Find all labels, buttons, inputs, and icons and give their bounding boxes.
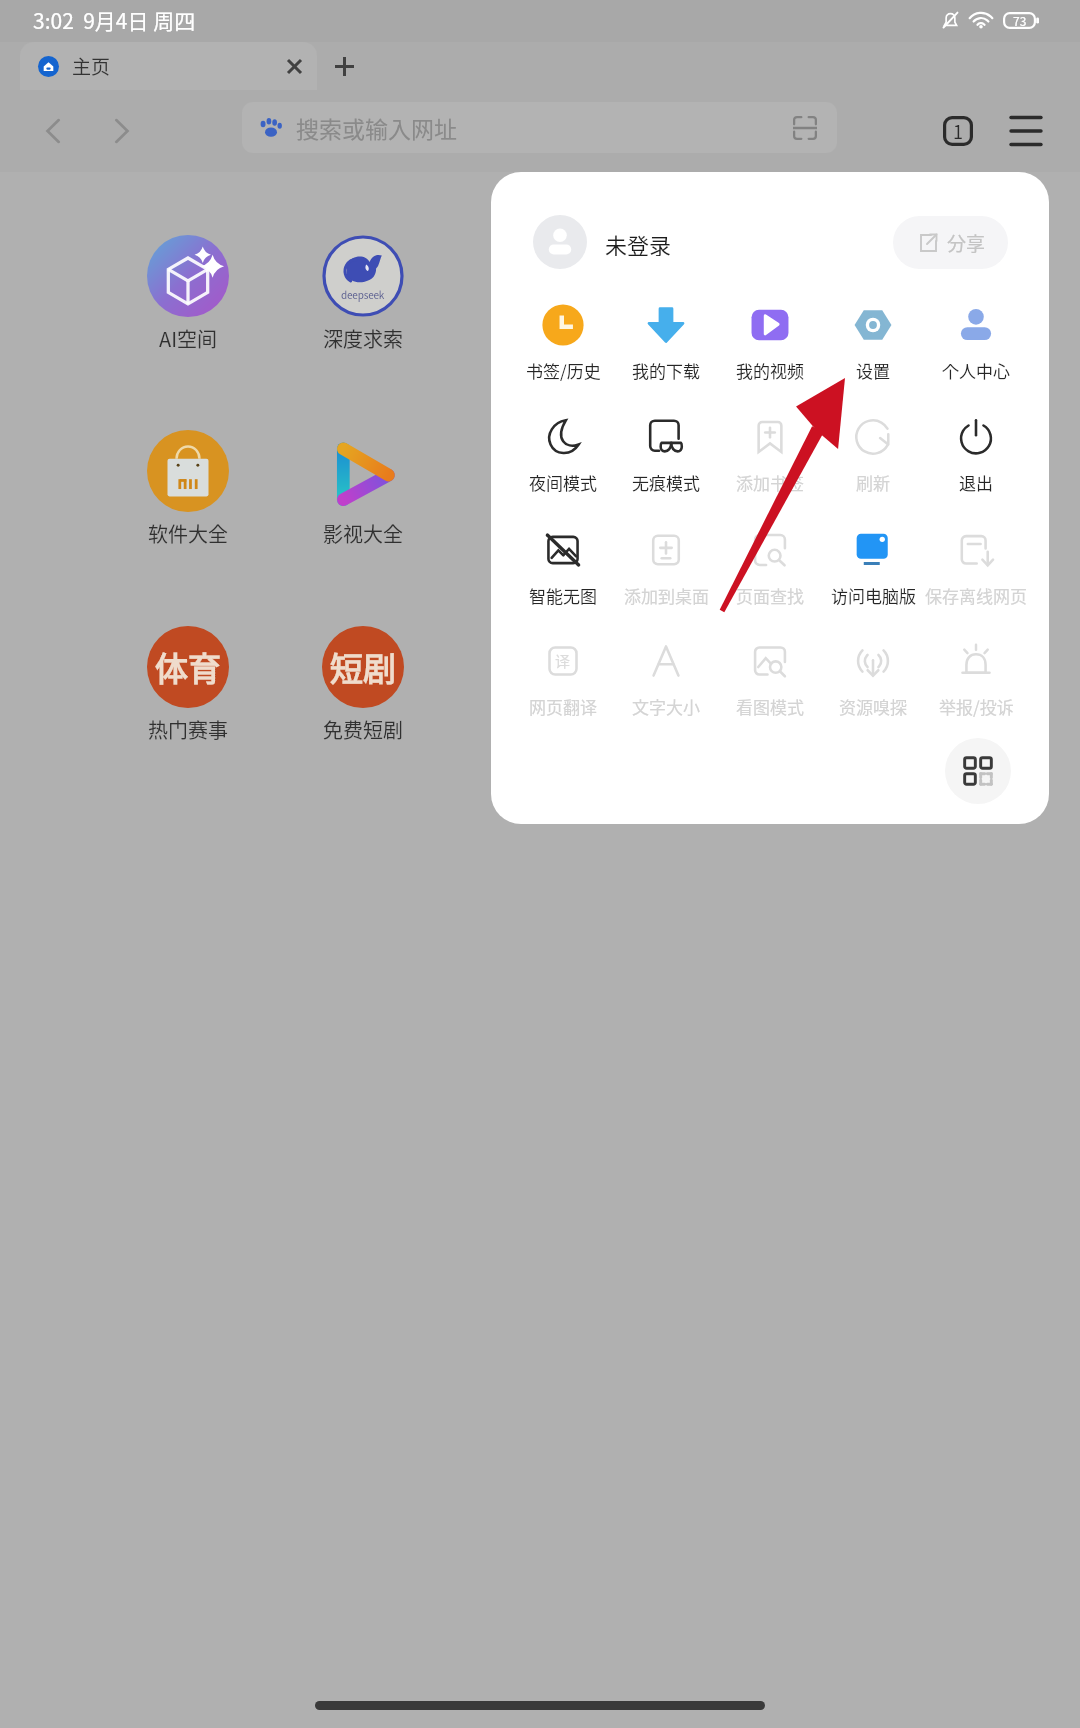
staticText: 书签/历史 bbox=[526, 358, 601, 382]
button[interactable]: 个人中心 bbox=[920, 299, 1032, 379]
button[interactable]: 访问电脑版 bbox=[817, 524, 929, 604]
button[interactable]: 看图模式 bbox=[714, 635, 826, 715]
button[interactable]: 设置 bbox=[817, 299, 929, 379]
button[interactable]: 主页 bbox=[20, 42, 317, 90]
staticText: 主页 bbox=[72, 52, 111, 80]
staticText: 短剧 bbox=[330, 643, 396, 691]
staticText: 未登录 bbox=[605, 228, 672, 256]
staticText: 看图模式 bbox=[736, 694, 804, 718]
button[interactable]: 夜间模式 bbox=[507, 411, 619, 491]
staticText: 添加书签 bbox=[736, 470, 804, 494]
button[interactable]: 短剧 bbox=[283, 626, 443, 741]
staticText: 夜间模式 bbox=[529, 470, 597, 494]
button[interactable]: 译 bbox=[507, 635, 619, 715]
staticText: deepseek bbox=[341, 287, 385, 301]
staticText: 分享 bbox=[947, 229, 986, 257]
button[interactable]: 分享 bbox=[893, 216, 1008, 269]
staticText: 体育 bbox=[155, 643, 221, 691]
staticText: 文字大小 bbox=[632, 694, 700, 718]
staticText: 退出 bbox=[959, 470, 993, 494]
staticText: 网页翻译 bbox=[529, 694, 597, 718]
staticText: 软件大全 bbox=[148, 519, 228, 545]
staticText: 我的视频 bbox=[736, 358, 804, 382]
staticText: 刷新 bbox=[856, 470, 890, 494]
button[interactable]: Forward bbox=[92, 101, 152, 161]
button[interactable]: 搜索或输入网址 bbox=[242, 102, 837, 153]
button[interactable]: Back bbox=[23, 101, 83, 161]
button[interactable]: Tabs bbox=[928, 101, 988, 161]
staticText: 智能无图 bbox=[529, 583, 597, 607]
button[interactable]: New tab bbox=[320, 42, 368, 90]
staticText: 我的下载 bbox=[632, 358, 700, 382]
staticText: 个人中心 bbox=[942, 358, 1010, 382]
staticText: 3:02 9月4日 周四 bbox=[33, 5, 196, 35]
button[interactable]: 退出 bbox=[920, 411, 1032, 491]
staticText: AI空间 bbox=[159, 324, 218, 350]
staticText: 73 bbox=[1013, 12, 1027, 29]
staticText: 1 bbox=[953, 118, 963, 144]
button[interactable]: 书签/历史 bbox=[507, 299, 619, 379]
button[interactable]: 保存离线网页 bbox=[920, 524, 1032, 604]
staticText: 举报/投诉 bbox=[939, 694, 1014, 718]
staticText: 热门赛事 bbox=[148, 715, 228, 741]
button[interactable]: 举报/投诉 bbox=[920, 635, 1032, 715]
button[interactable]: 添加书签 bbox=[714, 411, 826, 491]
button[interactable]: Close tab bbox=[274, 46, 314, 86]
button[interactable]: Menu bbox=[996, 101, 1056, 161]
staticText: 译 bbox=[555, 650, 571, 672]
staticText: 设置 bbox=[856, 358, 890, 382]
button[interactable]: 页面查找 bbox=[714, 524, 826, 604]
staticText: 保存离线网页 bbox=[925, 583, 1027, 607]
button[interactable]: 影视大全 bbox=[283, 430, 443, 545]
staticText: 影视大全 bbox=[323, 519, 403, 545]
button[interactable]: Scan QR bbox=[945, 738, 1011, 804]
staticText: 免费短剧 bbox=[323, 715, 403, 741]
staticText: 访问电脑版 bbox=[831, 583, 916, 607]
button[interactable]: 无痕模式 bbox=[610, 411, 722, 491]
staticText: 搜索或输入网址 bbox=[296, 111, 457, 144]
button[interactable]: Account bbox=[533, 215, 587, 269]
button[interactable]: 添加到桌面 bbox=[610, 524, 722, 604]
button[interactable]: 我的下载 bbox=[610, 299, 722, 379]
staticText: 无痕模式 bbox=[632, 470, 700, 494]
staticText: 添加到桌面 bbox=[624, 583, 709, 607]
button[interactable]: 刷新 bbox=[817, 411, 929, 491]
staticText: 资源嗅探 bbox=[839, 694, 907, 718]
button[interactable]: 我的视频 bbox=[714, 299, 826, 379]
staticText: 页面查找 bbox=[736, 583, 804, 607]
button[interactable]: deepseek bbox=[283, 235, 443, 350]
button[interactable]: 软件大全 bbox=[108, 430, 268, 545]
button[interactable]: Scan bbox=[785, 108, 825, 148]
button[interactable]: AI空间 bbox=[108, 235, 268, 350]
staticText: 深度求索 bbox=[323, 324, 403, 350]
button[interactable]: 体育 bbox=[108, 626, 268, 741]
button[interactable]: 文字大小 bbox=[610, 635, 722, 715]
button[interactable]: 智能无图 bbox=[507, 524, 619, 604]
button[interactable]: 资源嗅探 bbox=[817, 635, 929, 715]
